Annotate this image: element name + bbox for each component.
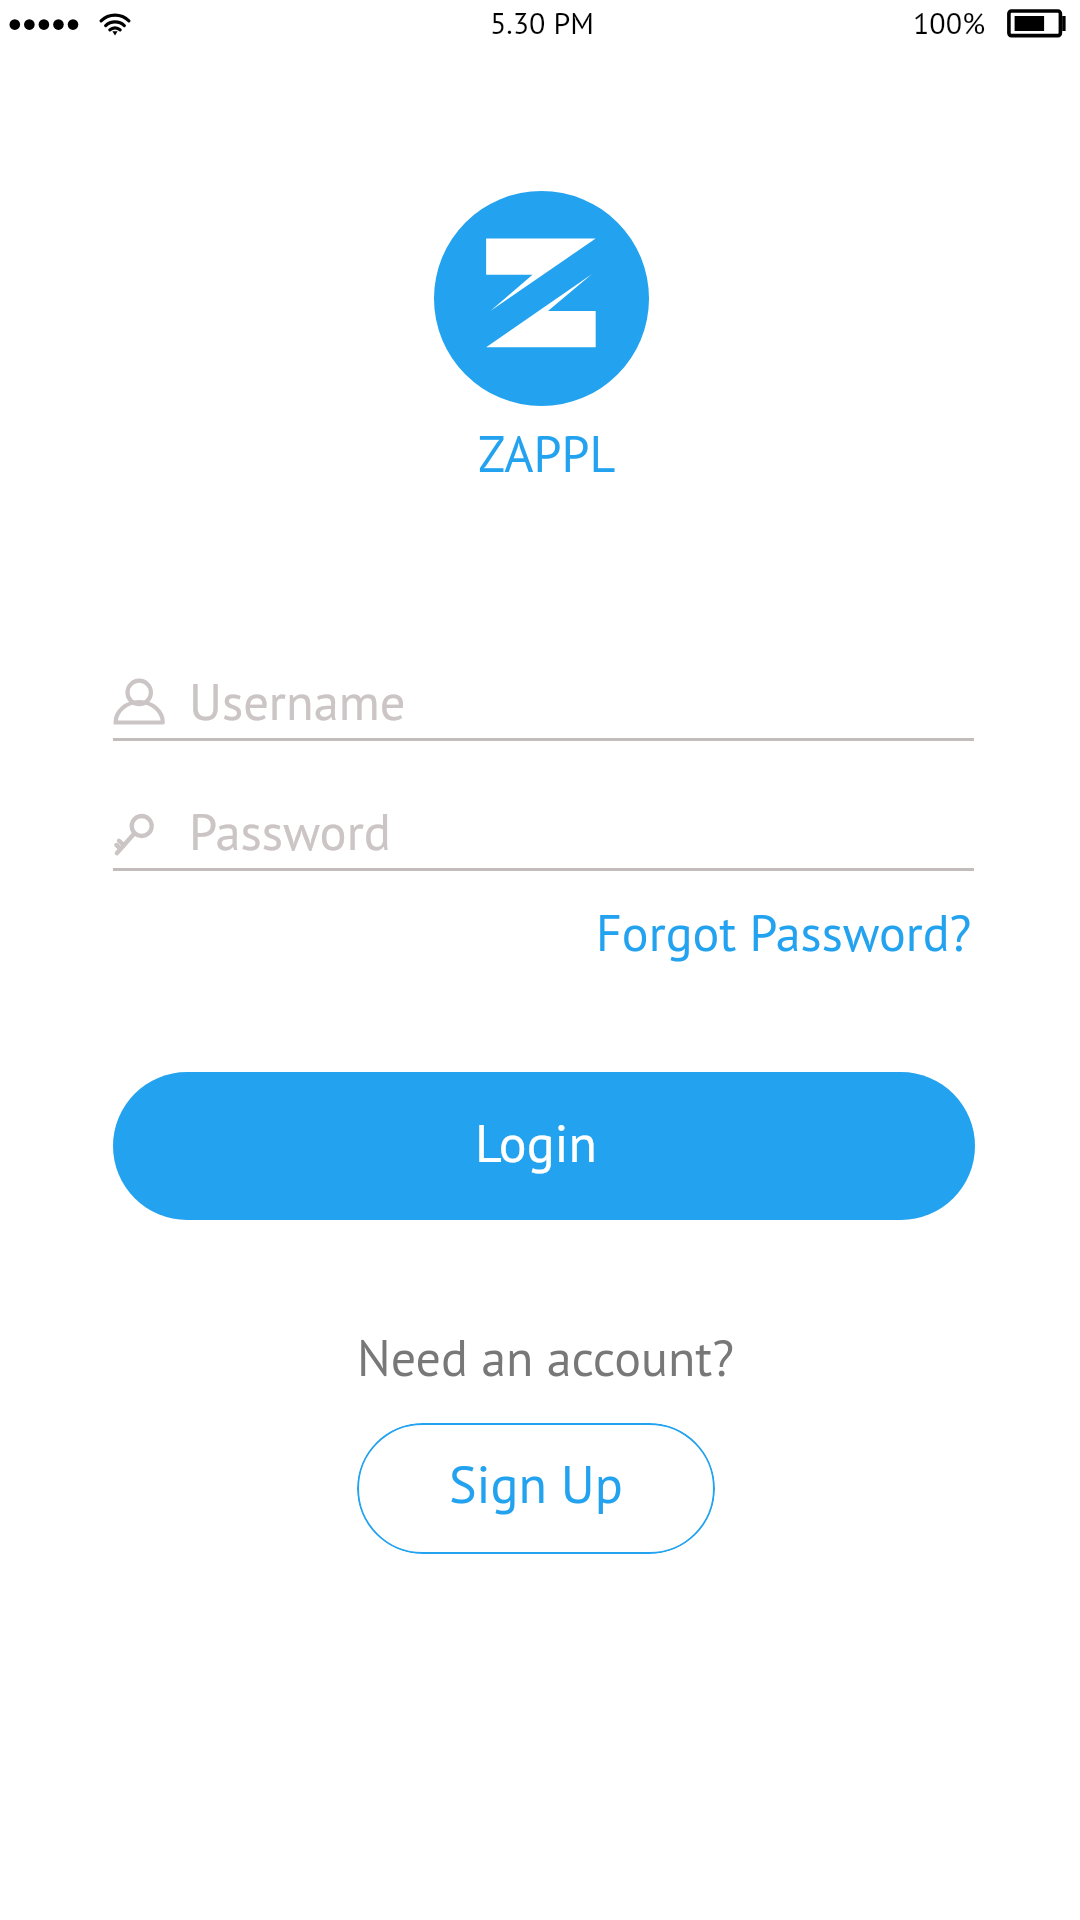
button[interactable]: Forgot Password? xyxy=(596,900,972,965)
staticText: Forgot Password? xyxy=(596,900,972,965)
other: Password xyxy=(113,799,169,871)
other: Signal, Wi-Fi and battery status xyxy=(0,0,1080,52)
staticText: Username xyxy=(189,669,406,734)
button[interactable]: Sign Up xyxy=(357,1423,715,1554)
staticText: Login xyxy=(475,1109,597,1176)
button[interactable]: Username xyxy=(113,669,974,749)
staticText: Sign Up xyxy=(449,1450,623,1517)
other: Username xyxy=(113,669,169,741)
other: ZAPPL logo xyxy=(434,191,649,406)
button[interactable]: Login xyxy=(113,1072,975,1220)
staticText: Password xyxy=(189,799,391,864)
staticText: Need an account? xyxy=(357,1325,735,1390)
staticText: 100% xyxy=(913,3,986,42)
staticText: 5.30 PM xyxy=(490,3,594,42)
button[interactable]: Password xyxy=(113,799,974,879)
staticText: ZAPPL xyxy=(478,421,616,486)
